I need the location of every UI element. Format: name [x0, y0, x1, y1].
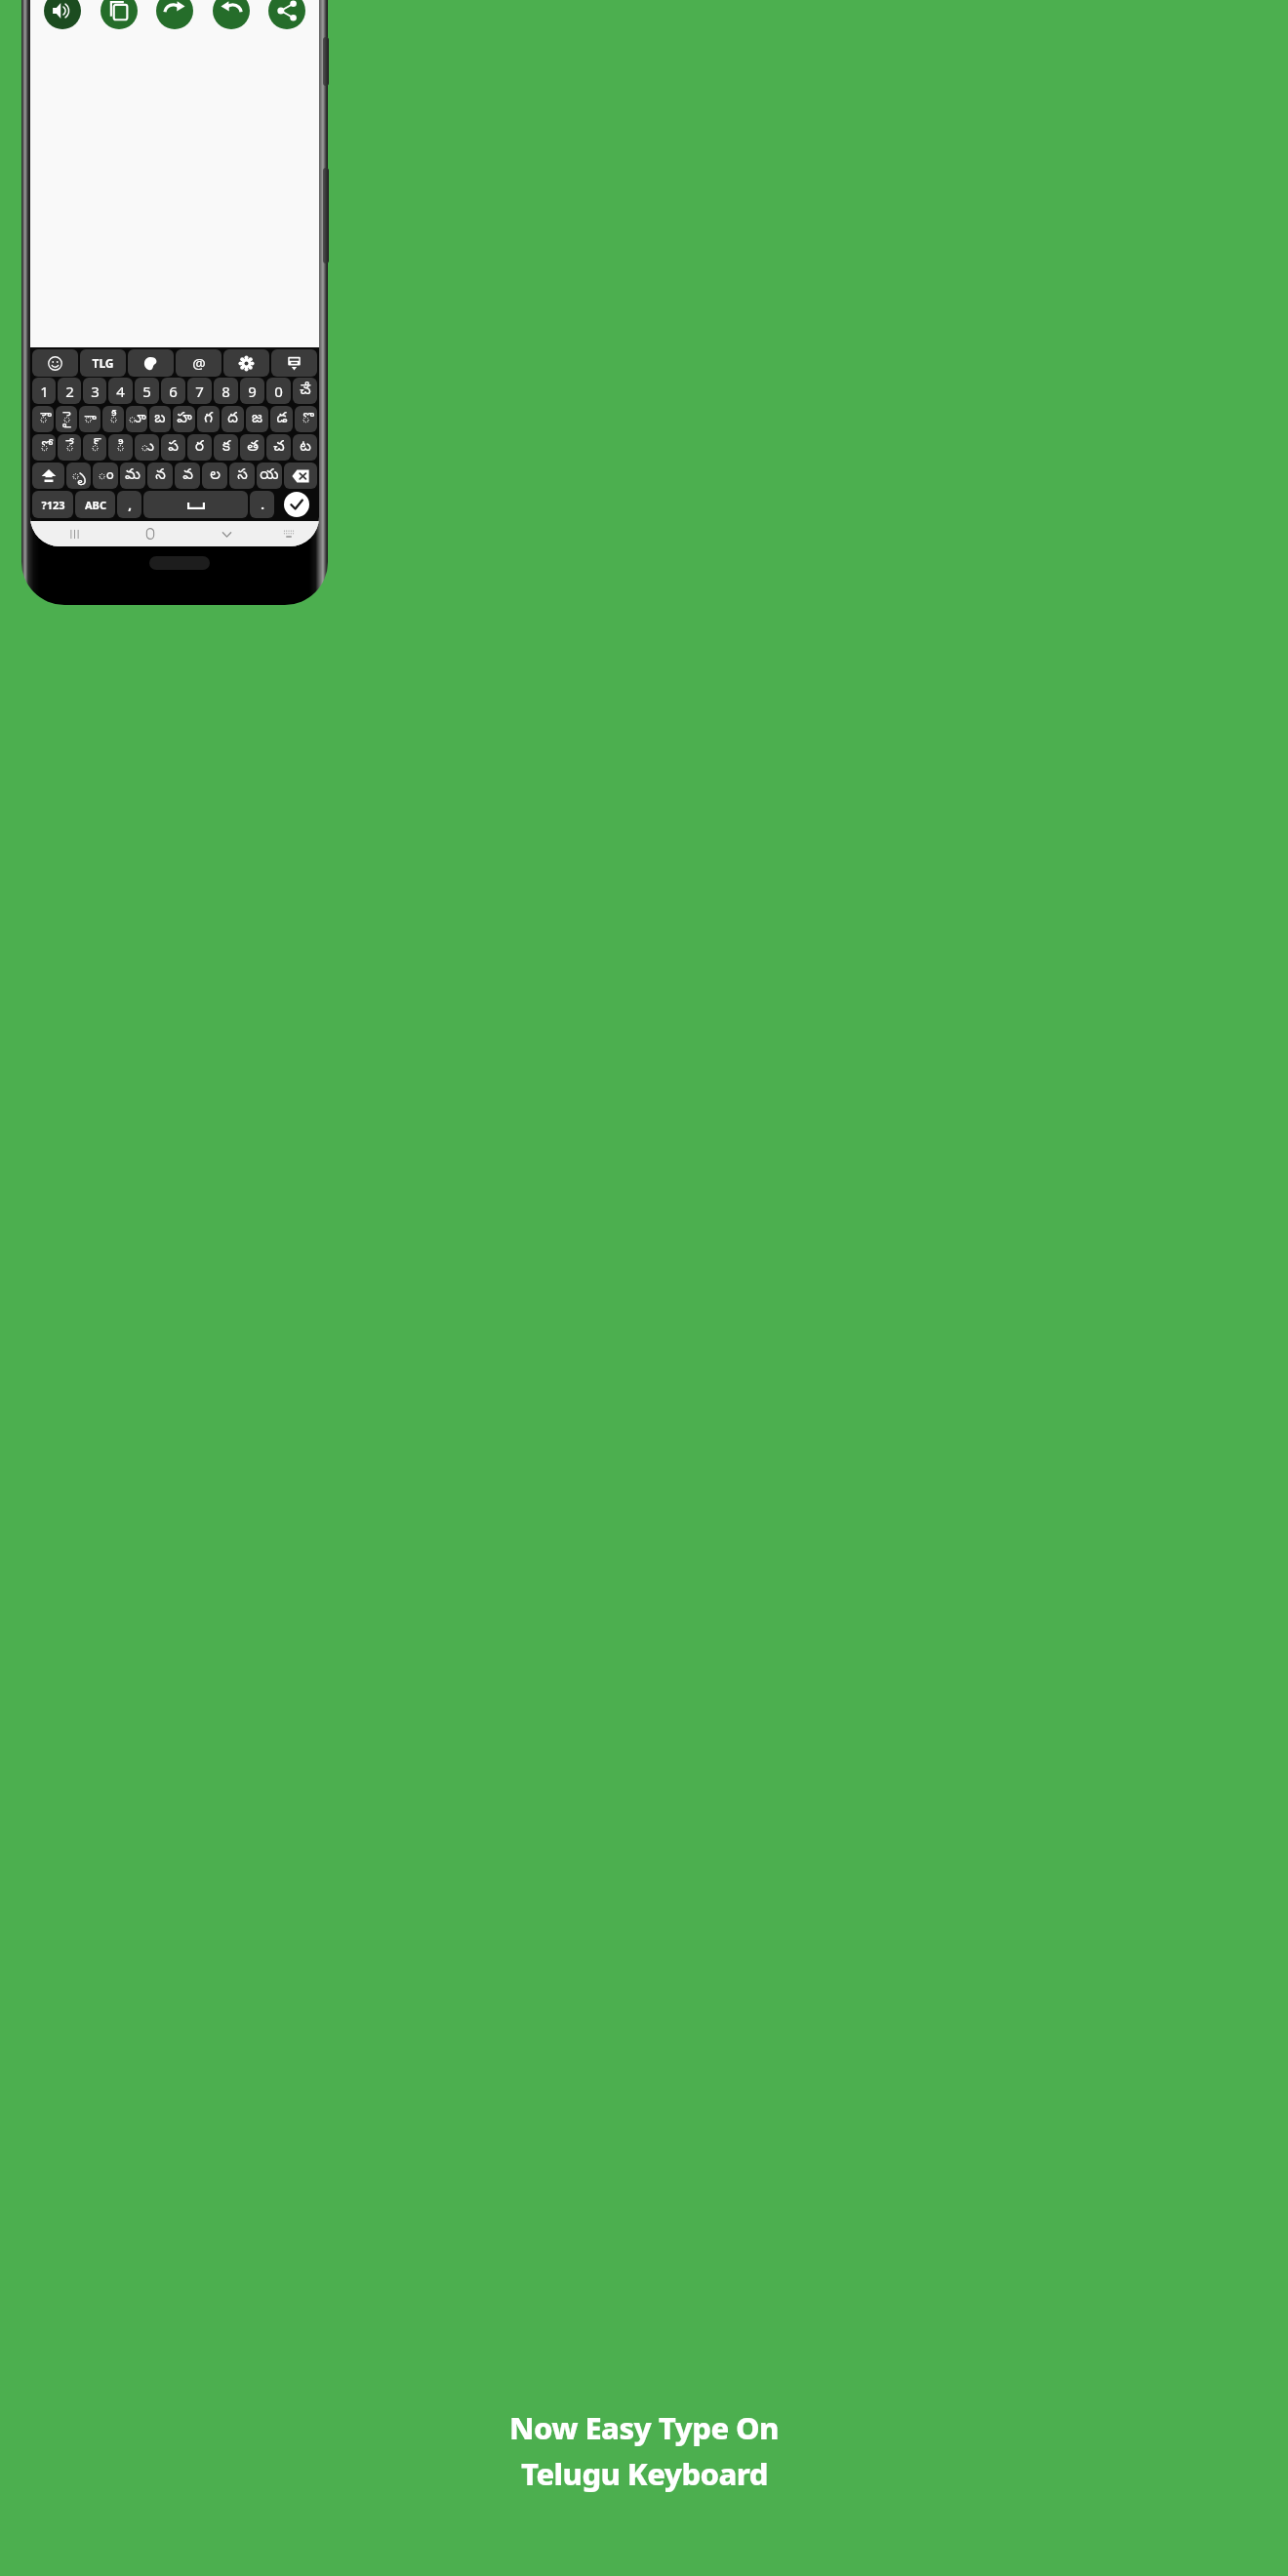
button[interactable]: ో: [32, 434, 56, 461]
staticText: 5: [142, 382, 151, 401]
button[interactable]: డ: [270, 406, 293, 432]
button[interactable]: Theme: [128, 349, 174, 377]
staticText: చ: [273, 438, 285, 458]
button[interactable]: Shift: [32, 463, 64, 489]
staticText: ొ: [302, 410, 310, 429]
button[interactable]: ట: [293, 434, 317, 461]
button[interactable]: క: [214, 434, 238, 461]
button[interactable]: Undo: [213, 0, 250, 29]
button[interactable]: 1: [32, 378, 56, 404]
staticText: Now Easy Type On: [509, 2407, 779, 2448]
button[interactable]: Space: [143, 491, 248, 518]
button[interactable]: ీ: [102, 406, 124, 432]
button[interactable]: 2: [58, 378, 81, 404]
button[interactable]: Recents: [36, 521, 112, 546]
button[interactable]: 4: [108, 378, 133, 404]
button[interactable]: 6: [161, 378, 185, 404]
button[interactable]: @: [176, 349, 221, 377]
staticText: ీ: [109, 410, 118, 429]
button[interactable]: ు: [135, 434, 159, 461]
button[interactable]: Back: [188, 521, 264, 546]
staticText: ట: [300, 438, 311, 458]
button[interactable]: ద: [221, 406, 244, 432]
staticText: 8: [221, 382, 230, 401]
staticText: జ: [252, 410, 262, 429]
staticText: ్: [91, 438, 100, 458]
staticText: 6: [169, 382, 178, 401]
staticText: 0: [274, 382, 283, 401]
staticText: డ: [276, 410, 288, 429]
staticText: ABC: [85, 498, 106, 512]
staticText: ూ: [128, 410, 146, 429]
button[interactable]: ౘ: [293, 378, 317, 404]
button[interactable]: మ: [120, 463, 145, 489]
staticText: య: [260, 466, 279, 486]
staticText: స: [237, 466, 248, 486]
button[interactable]: ి: [108, 434, 133, 461]
button[interactable]: 8: [214, 378, 238, 404]
button[interactable]: య: [257, 463, 282, 489]
button[interactable]: గ: [197, 406, 220, 432]
button[interactable]: Redo: [156, 0, 193, 29]
button[interactable]: ABC: [75, 491, 115, 518]
button[interactable]: జ: [246, 406, 268, 432]
staticText: ల: [210, 466, 221, 486]
button[interactable]: 9: [240, 378, 264, 404]
button[interactable]: Emoji: [32, 349, 78, 377]
button[interactable]: 0: [266, 378, 291, 404]
button[interactable]: ై: [56, 406, 77, 432]
button[interactable]: వ: [175, 463, 200, 489]
staticText: ృ: [71, 466, 86, 486]
button[interactable]: ౌ: [32, 406, 54, 432]
button[interactable]: ే: [58, 434, 81, 461]
button[interactable]: ?123: [32, 491, 73, 518]
staticText: TLG: [92, 355, 114, 371]
button[interactable]: ,: [117, 491, 141, 518]
button[interactable]: Copy: [101, 0, 138, 29]
button[interactable]: న: [147, 463, 173, 489]
button[interactable]: చ: [266, 434, 291, 461]
button[interactable]: ర: [187, 434, 212, 461]
button[interactable]: Enter: [284, 492, 309, 517]
button[interactable]: ల: [202, 463, 227, 489]
button[interactable]: స: [229, 463, 255, 489]
staticText: ై: [62, 410, 71, 429]
button[interactable]: Home: [112, 521, 188, 546]
button[interactable]: 7: [187, 378, 212, 404]
button[interactable]: Settings: [223, 349, 269, 377]
staticText: ర: [195, 438, 204, 458]
staticText: త: [247, 438, 259, 458]
button[interactable]: Hide keyboard: [271, 349, 317, 377]
button[interactable]: ్: [83, 434, 106, 461]
staticText: హ: [177, 410, 192, 429]
button[interactable]: TLG: [80, 349, 126, 377]
staticText: గ: [204, 410, 213, 429]
button[interactable]: ప: [161, 434, 185, 461]
button[interactable]: హ: [173, 406, 195, 432]
button[interactable]: బ: [149, 406, 171, 432]
staticText: ో: [40, 438, 49, 458]
button[interactable]: Backspace: [284, 463, 317, 489]
button[interactable]: 5: [135, 378, 159, 404]
staticText: 9: [248, 382, 257, 401]
staticText: 7: [195, 382, 204, 401]
staticText: Telugu Keyboard: [521, 2453, 768, 2494]
staticText: 4: [116, 382, 125, 401]
button[interactable]: ృ: [66, 463, 91, 489]
staticText: ే: [65, 438, 74, 458]
button[interactable]: ం: [93, 463, 118, 489]
staticText: వ: [182, 466, 193, 486]
staticText: ౌ: [39, 410, 48, 429]
button[interactable]: ొ: [295, 406, 317, 432]
button[interactable]: Share: [268, 0, 305, 29]
button[interactable]: త: [240, 434, 264, 461]
button[interactable]: Speak: [44, 0, 81, 29]
button[interactable]: ా: [79, 406, 101, 432]
staticText: 1: [40, 382, 49, 401]
staticText: ా: [84, 410, 97, 429]
button[interactable]: 3: [83, 378, 106, 404]
button[interactable]: ూ: [126, 406, 147, 432]
button[interactable]: .: [250, 491, 274, 518]
staticText: @: [192, 353, 206, 373]
button[interactable]: Switch keyboard: [264, 521, 313, 546]
